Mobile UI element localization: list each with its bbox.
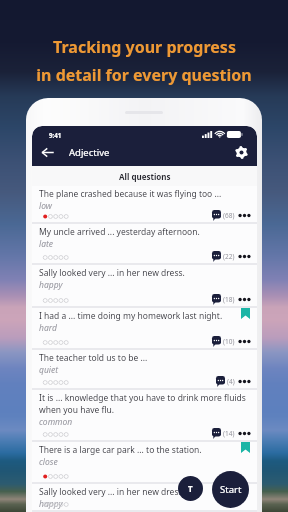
staticText: close — [39, 456, 58, 468]
staticText: low — [39, 200, 52, 212]
button[interactable]: There is a large car park ... to the sta… — [32, 442, 257, 482]
staticText: (22) — [223, 252, 235, 261]
staticText: when you have flu. — [39, 404, 115, 416]
staticText: Adjective — [69, 146, 110, 159]
staticText: late — [39, 238, 54, 250]
button[interactable]: Settings — [232, 141, 251, 163]
staticText: (14) — [223, 429, 235, 438]
staticText: hard — [39, 322, 57, 334]
button[interactable]: I had a ... time doing my homework last … — [32, 308, 257, 348]
staticText: There is a large car park ... to the sta… — [39, 444, 202, 456]
staticText: T — [188, 483, 193, 494]
staticText: happy — [39, 279, 63, 291]
staticText: All questions — [119, 171, 171, 182]
staticText: Start — [220, 483, 242, 496]
button[interactable]: More options — [238, 336, 251, 347]
button[interactable]: The teacher told us to be ... — [32, 350, 257, 388]
button[interactable]: More options — [238, 428, 251, 439]
button[interactable]: Start — [212, 471, 249, 508]
button[interactable]: Back — [36, 141, 58, 163]
staticText: Sally looked very ... in her new dress. — [39, 486, 185, 498]
button[interactable]: Sally looked very ... in her new dress. — [32, 265, 257, 306]
button[interactable]: More options — [238, 376, 251, 387]
staticText: I had a ... time doing my homework last … — [39, 310, 223, 322]
staticText: common — [39, 416, 73, 428]
button[interactable]: More options — [238, 294, 251, 305]
button[interactable]: More options — [238, 210, 251, 221]
staticText: (4) — [227, 377, 235, 386]
staticText: happy — [39, 498, 63, 510]
button[interactable]: My uncle arrived ... yesterday afternoon… — [32, 224, 257, 263]
button[interactable]: Translate — [178, 476, 203, 501]
button[interactable]: The plane crashed because it was flying … — [32, 186, 257, 222]
staticText: in detail for every question — [36, 64, 252, 86]
staticText: quiet — [39, 364, 59, 376]
staticText: Sally looked very ... in her new dress. — [39, 267, 185, 279]
staticText: It is ... knowledge that you have to dri… — [39, 392, 246, 404]
staticText: (18) — [223, 295, 235, 304]
staticText: (10) — [223, 337, 235, 346]
button[interactable]: Sally looked very ... in her new dress. — [32, 484, 257, 510]
staticText: The plane crashed because it was flying … — [39, 188, 222, 200]
staticText: Tracking your progress — [53, 36, 236, 58]
button[interactable]: More options — [238, 251, 251, 262]
button[interactable]: It is ... knowledge that you have to dri… — [32, 390, 257, 440]
staticText: (68) — [223, 211, 235, 220]
staticText: 9:41 — [49, 131, 62, 139]
staticText: The teacher told us to be ... — [39, 352, 148, 364]
staticText: My uncle arrived ... yesterday afternoon… — [39, 226, 200, 238]
